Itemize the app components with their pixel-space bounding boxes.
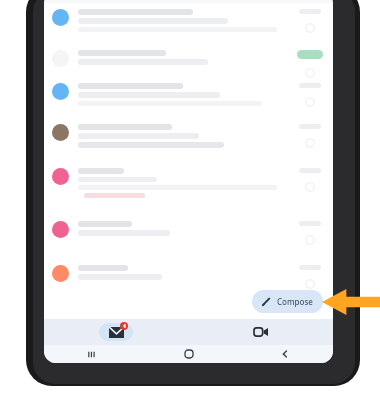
button[interactable]	[44, 118, 333, 162]
button[interactable]	[44, 259, 333, 295]
button[interactable]	[44, 162, 333, 215]
button[interactable]: Back	[237, 345, 333, 363]
button[interactable]: Meet	[188, 319, 333, 345]
button[interactable]	[44, 3, 333, 44]
staticText: Compose	[277, 296, 313, 307]
button[interactable]: Compose	[252, 290, 323, 313]
staticText: 4	[123, 323, 126, 330]
button[interactable]	[44, 44, 333, 77]
button[interactable]: Mail	[44, 319, 188, 345]
button[interactable]: Recent apps	[44, 345, 141, 363]
button[interactable]: Home	[141, 345, 237, 363]
button[interactable]	[44, 215, 333, 259]
button[interactable]	[44, 77, 333, 118]
